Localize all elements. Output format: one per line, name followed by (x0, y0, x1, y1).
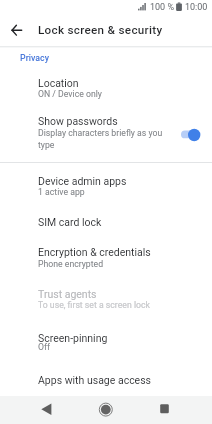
button[interactable]: Location (0, 70, 212, 104)
staticText: 1 active app (38, 187, 85, 197)
staticText: Device admin apps (38, 175, 127, 187)
button[interactable] (32, 396, 60, 424)
staticText: Encryption & credentials (38, 246, 151, 258)
staticText: ON / Device only (38, 89, 102, 99)
staticText: 10:00 (185, 2, 208, 13)
staticText: Phone encrypted (38, 259, 104, 269)
button[interactable] (92, 396, 120, 424)
staticText: Display characters briefly as you (38, 128, 163, 138)
staticText: type (38, 140, 55, 150)
button[interactable]: Show passwords (0, 104, 212, 160)
button[interactable] (6, 18, 28, 40)
staticText: Screen-pinning (38, 332, 108, 344)
staticText: SIM card lock (38, 216, 102, 228)
staticText: Trust agents (38, 288, 97, 300)
staticText: Off (38, 342, 51, 352)
staticText: Show passwords (38, 115, 118, 127)
button[interactable]: Screen-pinning (0, 324, 212, 366)
staticText: Privacy (20, 53, 49, 63)
button[interactable]: SIM card lock (0, 210, 212, 240)
button[interactable]: Apps with usage access (0, 366, 212, 396)
button[interactable] (150, 396, 178, 424)
staticText: Location (38, 77, 79, 89)
button[interactable]: Device admin apps (0, 168, 212, 210)
staticText: 100 % (150, 2, 174, 13)
staticText: To use, first set a screen lock (38, 300, 150, 310)
staticText: Apps with usage access (38, 374, 152, 386)
button[interactable]: Trust agents (0, 282, 212, 324)
button[interactable]: Encryption & credentials (0, 240, 212, 282)
staticText: Lock screen & security (38, 23, 163, 37)
